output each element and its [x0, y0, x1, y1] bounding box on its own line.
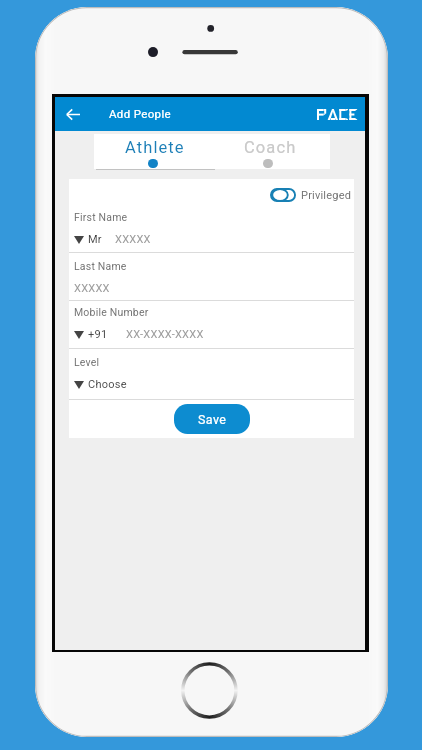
staticText: First Name	[74, 211, 128, 223]
button[interactable]: Coach	[212, 134, 330, 169]
staticText: +91	[88, 328, 108, 341]
staticText: Last Name	[74, 260, 127, 272]
staticText: XX-XXXX-XXXX	[126, 328, 204, 341]
other: PACE logo	[317, 109, 357, 120]
staticText: Coach	[244, 138, 297, 157]
staticText: Mr	[88, 233, 102, 246]
button[interactable]: Save	[174, 404, 250, 434]
button[interactable]: Mobile Number	[69, 301, 354, 348]
button[interactable]: Last Name	[69, 253, 354, 300]
staticText: Choose	[88, 378, 127, 391]
button[interactable]: First Name	[69, 206, 354, 252]
staticText: XXXXX	[115, 233, 151, 246]
button[interactable]: Back	[55, 97, 95, 131]
staticText: Level	[74, 356, 100, 368]
staticText: Add People	[109, 107, 172, 120]
button[interactable]: Level	[69, 349, 354, 399]
button[interactable]: Privileged	[270, 188, 352, 202]
staticText: Privileged	[301, 189, 352, 202]
button[interactable]: Athlete	[94, 134, 212, 169]
staticText: Mobile Number	[74, 306, 149, 318]
staticText: Save	[198, 412, 227, 427]
staticText: Athlete	[125, 138, 185, 157]
staticText: XXXXX	[74, 282, 110, 295]
